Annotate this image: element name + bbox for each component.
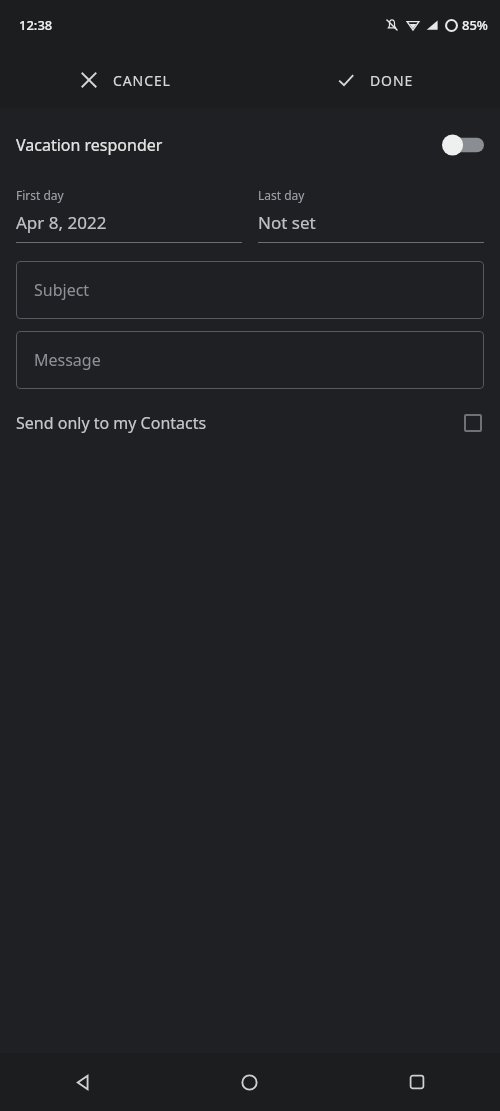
button[interactable]: DONE bbox=[250, 52, 500, 108]
button[interactable]: CANCEL bbox=[0, 52, 250, 108]
button[interactable]: Subject bbox=[16, 261, 484, 319]
button[interactable]: Back bbox=[0, 1053, 166, 1111]
staticText: 12:38 bbox=[19, 16, 53, 34]
button[interactable]: First day bbox=[16, 187, 242, 243]
button[interactable]: Last day bbox=[258, 187, 484, 243]
staticText: 85% bbox=[462, 16, 488, 34]
button[interactable]: Recent apps bbox=[333, 1053, 500, 1111]
staticText: Vacation responder bbox=[16, 134, 442, 156]
staticText: Message bbox=[34, 349, 101, 371]
staticText: Not set bbox=[258, 211, 316, 234]
staticText: Apr 8, 2022 bbox=[16, 211, 107, 234]
button[interactable]: Vacation responder bbox=[0, 125, 500, 165]
staticText: Subject bbox=[34, 279, 90, 301]
staticText: DONE bbox=[370, 71, 414, 90]
staticText: First day bbox=[16, 187, 64, 203]
button[interactable]: Send only to my Contacts bbox=[0, 403, 500, 443]
button[interactable]: Message bbox=[16, 331, 484, 389]
button[interactable]: Home bbox=[166, 1053, 333, 1111]
staticText: Send only to my Contacts bbox=[16, 412, 464, 434]
staticText: Last day bbox=[258, 187, 305, 203]
staticText: CANCEL bbox=[113, 71, 171, 90]
